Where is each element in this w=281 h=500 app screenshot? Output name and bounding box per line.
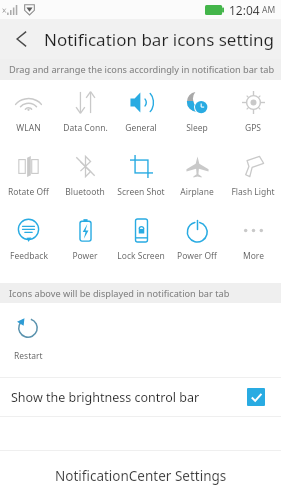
button[interactable]: WLAN (0, 91, 57, 155)
staticText: Restart (14, 350, 43, 362)
staticText: AM (262, 4, 276, 16)
staticText: Airplane (180, 186, 214, 198)
staticText: Icons above will be displayed in notific… (9, 287, 230, 300)
button[interactable]: Feedback (0, 219, 57, 283)
staticText: Rotate Off (8, 186, 49, 198)
staticText: Power (72, 250, 98, 262)
button[interactable]: Data Conn. (57, 91, 113, 155)
staticText: NotificationCenter Settings (55, 467, 227, 485)
staticText: General (125, 122, 157, 134)
staticText: Drag and arrange the icons accordingly i… (9, 63, 275, 76)
staticText: Sleep (186, 122, 208, 134)
staticText: Screen Shot (117, 186, 165, 198)
button[interactable]: GPS (225, 91, 281, 155)
staticText: Show the brightness control bar (11, 389, 200, 406)
staticText: Notification bar icons setting (44, 28, 275, 51)
button[interactable]: Bluetooth (57, 155, 113, 219)
staticText: More (243, 250, 264, 262)
staticText: Power Off (177, 250, 217, 262)
button[interactable]: Power (57, 219, 113, 283)
button[interactable]: General (113, 91, 169, 155)
button[interactable]: Restart (0, 317, 56, 362)
staticText: Flash Light (231, 186, 275, 198)
staticText: WLAN (16, 122, 41, 134)
button[interactable]: Back (0, 19, 44, 59)
staticText: Bluetooth (65, 186, 105, 198)
button[interactable]: Power Off (169, 219, 225, 283)
button[interactable]: Rotate Off (0, 155, 57, 219)
button[interactable]: Sleep (169, 91, 225, 155)
staticText: 12:04 (229, 2, 260, 18)
button[interactable]: Screen Shot (113, 155, 169, 219)
staticText: Feedback (10, 250, 48, 262)
button[interactable]: Lock Screen (113, 219, 169, 283)
button[interactable]: Show the brightness control bar (0, 378, 281, 416)
button[interactable]: Airplane (169, 155, 225, 219)
staticText: GPS (245, 122, 261, 134)
button[interactable]: More (225, 219, 281, 283)
staticText: Lock Screen (117, 250, 165, 262)
button[interactable]: Flash Light (225, 155, 281, 219)
staticText: Data Conn. (63, 122, 108, 134)
